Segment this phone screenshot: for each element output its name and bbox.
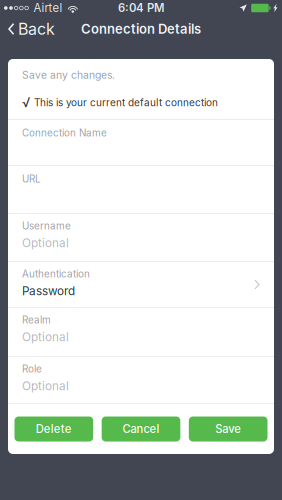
staticText: Delete (36, 422, 72, 436)
staticText: √ (22, 94, 30, 110)
button[interactable]: Delete (14, 416, 93, 441)
staticText: Save (215, 422, 241, 436)
staticText: This is your current default connection (34, 96, 218, 109)
staticText: Back (18, 19, 55, 39)
staticText: Optional (22, 379, 69, 393)
staticText: Connection Details (81, 21, 201, 37)
button[interactable]: Save (189, 416, 267, 441)
button[interactable]: Cancel (102, 416, 180, 441)
staticText: Password (22, 284, 75, 298)
staticText: Save any changes. (22, 69, 115, 81)
staticText: Cancel (122, 422, 159, 436)
staticText: 6:04 PM (118, 1, 164, 15)
staticText: Airtel (33, 1, 62, 15)
staticText: Realm (22, 314, 51, 326)
staticText: Optional (22, 330, 69, 344)
staticText: Connection Name (22, 127, 107, 139)
staticText: Username (22, 220, 71, 232)
staticText: URL (22, 173, 41, 185)
staticText: Authentication (22, 268, 90, 280)
staticText: Optional (22, 236, 69, 250)
button[interactable]: Back (0, 16, 62, 42)
staticText: Role (22, 363, 42, 375)
